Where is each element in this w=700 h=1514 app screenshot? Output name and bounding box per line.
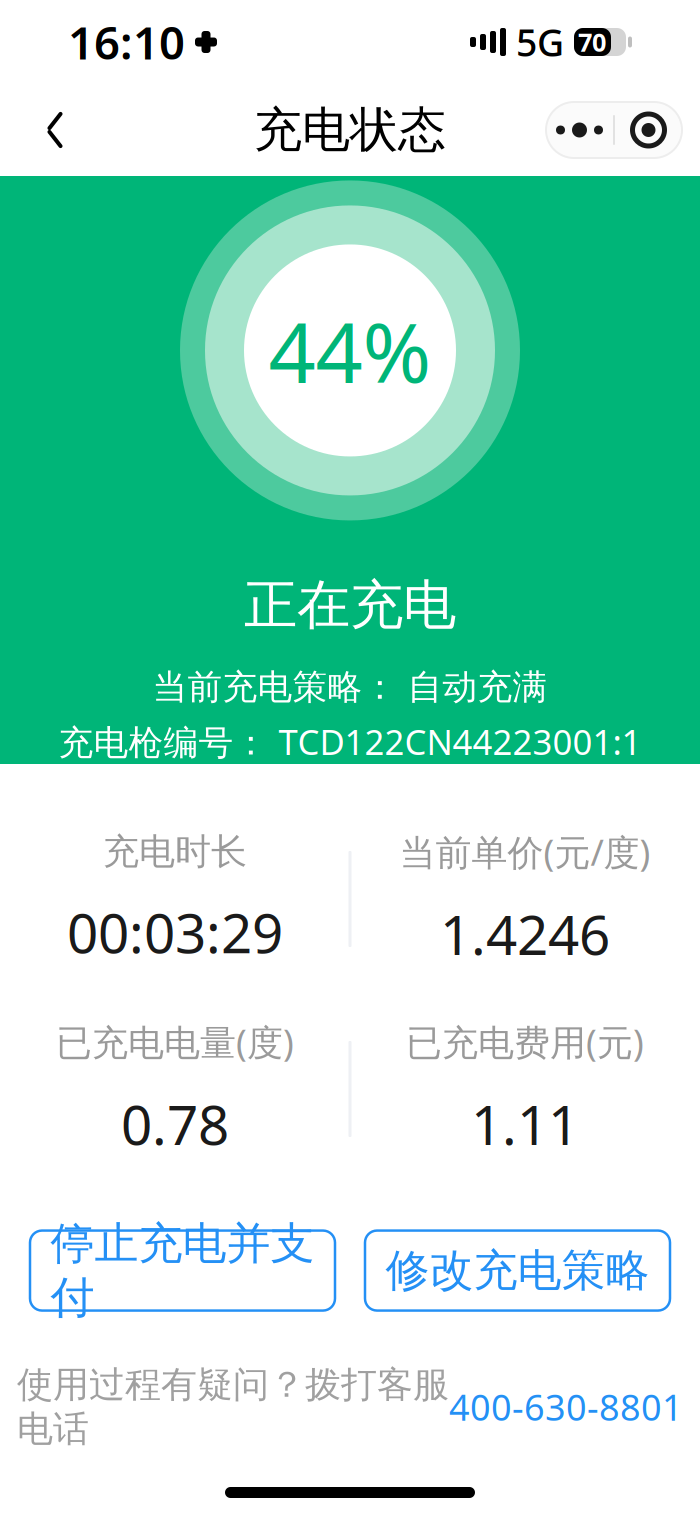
staticText: 70	[578, 25, 606, 59]
button[interactable]: More	[546, 102, 613, 158]
staticText: 充电时长	[103, 830, 247, 874]
button[interactable]: Back	[18, 93, 92, 167]
staticText: 当前单价(元/度)	[399, 828, 650, 876]
staticText: 修改充电策略	[385, 1243, 649, 1297]
staticText: 使用过程有疑问？拨打客服电话	[17, 1363, 449, 1451]
staticText: 停止充电并支付	[50, 1216, 314, 1325]
staticText: 充电状态	[254, 100, 446, 159]
staticText: 1.4246	[440, 898, 610, 970]
staticText: 正在充电	[244, 572, 456, 638]
button[interactable]: 使用过程有疑问？拨打客服电话	[17, 1363, 683, 1451]
button[interactable]: 停止充电并支付	[30, 1231, 335, 1311]
staticText: 充电枪编号： TCD122CN44223001:1	[58, 718, 641, 764]
staticText: 已充电电量(度)	[56, 1018, 294, 1066]
staticText: 0.78	[121, 1088, 229, 1160]
button[interactable]: 修改充电策略	[365, 1231, 670, 1311]
staticText: 已充电费用(元)	[406, 1018, 644, 1066]
staticText: 400-630-8801	[449, 1383, 683, 1431]
staticText: 44%	[268, 295, 431, 405]
staticText: 16:10	[68, 12, 185, 72]
staticText: 00:03:29	[67, 896, 283, 968]
staticText: 1.11	[471, 1088, 579, 1160]
staticText: 5G	[516, 17, 564, 67]
staticText: 当前充电策略： 自动充满	[152, 666, 547, 708]
button[interactable]: Close	[615, 102, 682, 158]
